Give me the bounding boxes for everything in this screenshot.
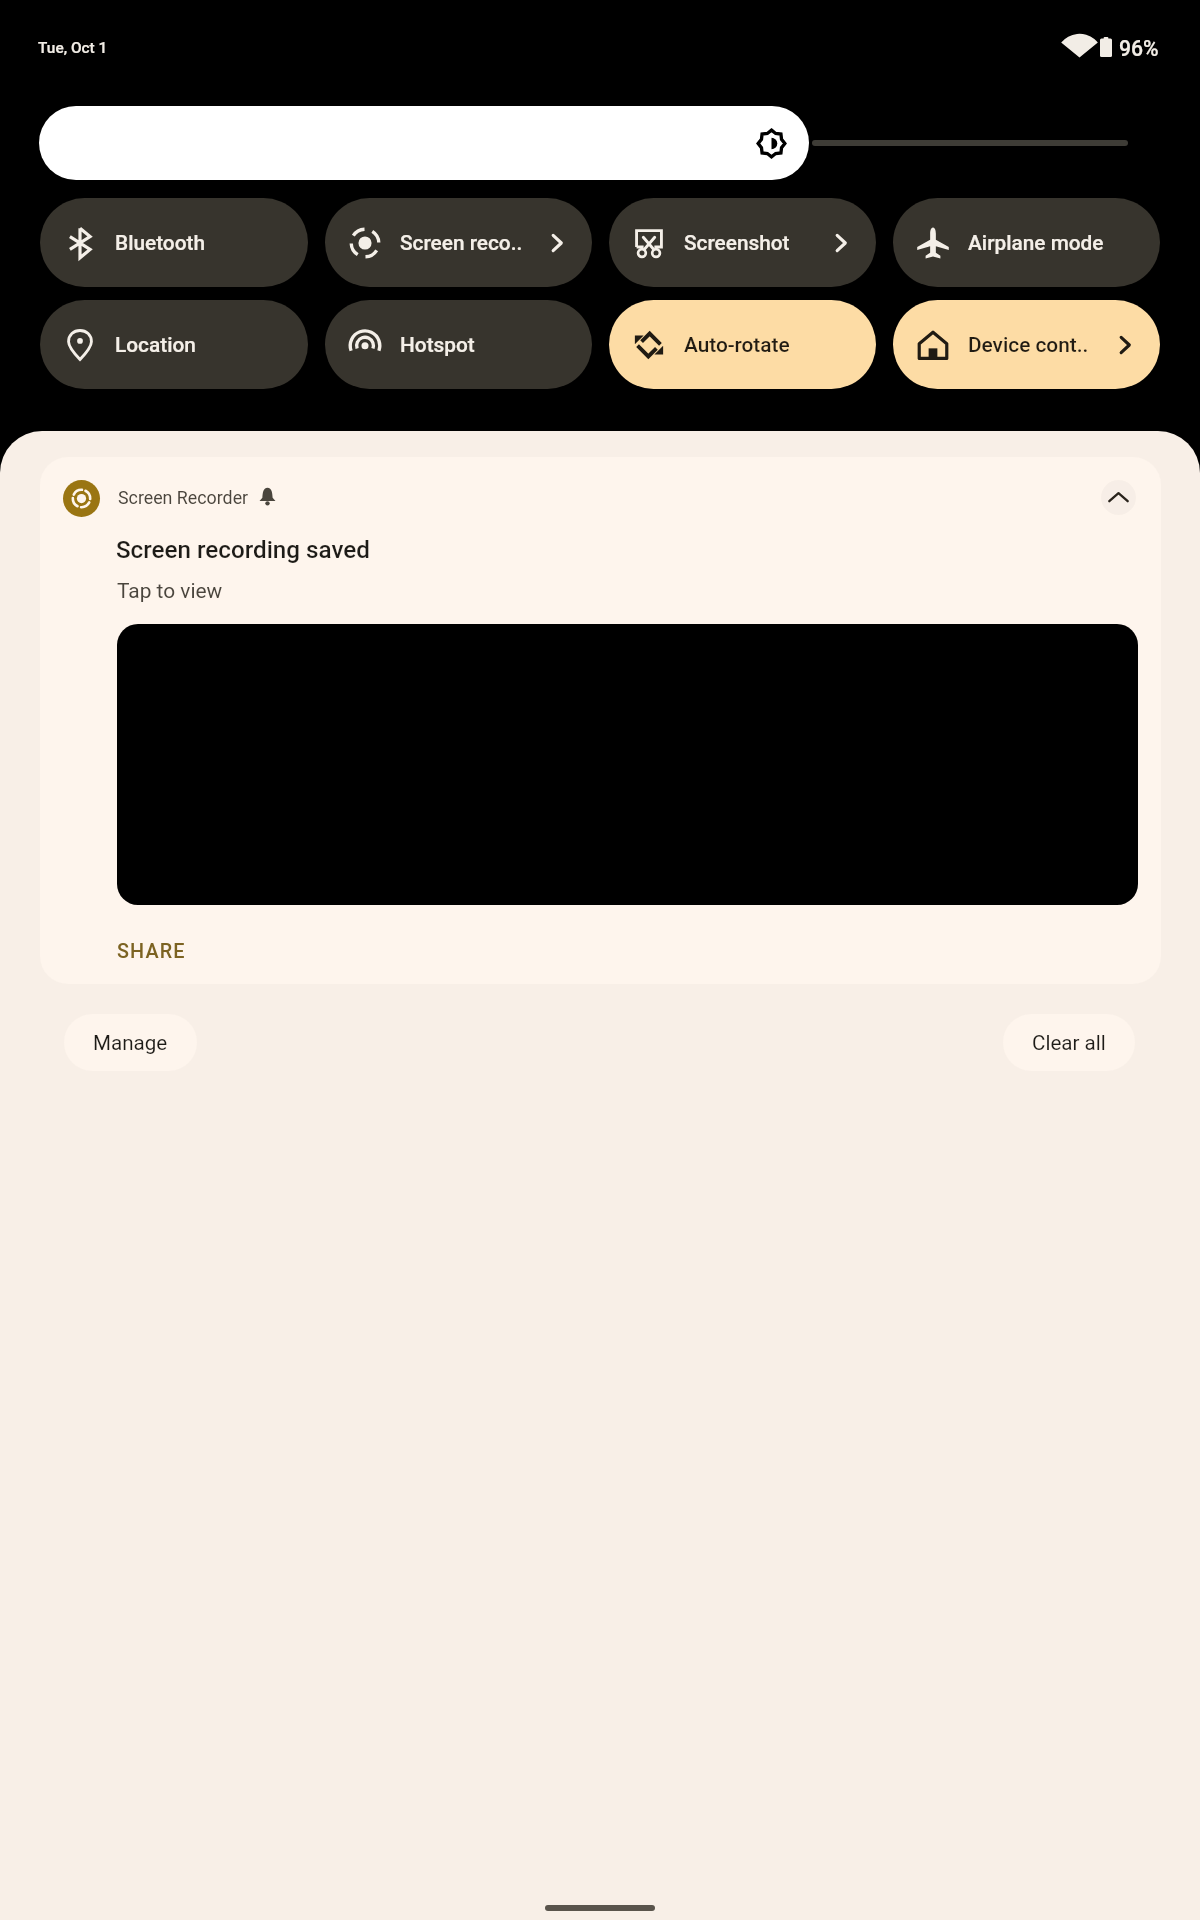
staticText: Bluetooth	[115, 231, 205, 255]
staticText: Screen recording saved	[116, 536, 370, 564]
button[interactable]: Collapse notification	[1101, 480, 1136, 515]
staticText: Location	[115, 333, 196, 357]
button[interactable]: Screen reco..	[325, 198, 592, 287]
staticText: Screen Recorder	[118, 487, 249, 508]
button[interactable]: SHARE	[117, 940, 186, 963]
staticText: Hotspot	[400, 333, 475, 357]
staticText: Airplane mode	[968, 231, 1104, 255]
button[interactable]: Manage	[64, 1014, 197, 1071]
button[interactable]: Bluetooth	[40, 198, 308, 287]
staticText: Screenshot	[684, 231, 790, 255]
button[interactable]: Airplane mode	[893, 198, 1160, 287]
button[interactable]: Screenshot	[609, 198, 876, 287]
button[interactable]: Location	[40, 300, 308, 389]
button[interactable]: Brightness	[39, 106, 809, 180]
staticText: Auto-rotate	[684, 333, 790, 357]
button[interactable]: Recording preview	[117, 624, 1138, 905]
staticText: Clear all	[1032, 1031, 1106, 1055]
staticText: 96%	[1119, 36, 1159, 61]
staticText: Device cont..	[968, 333, 1089, 357]
button[interactable]: Auto-rotate	[609, 300, 876, 389]
staticText: Tap to view	[117, 579, 223, 603]
staticText: Screen reco..	[400, 231, 523, 255]
staticText: Manage	[93, 1031, 168, 1055]
staticText: Tue, Oct 1	[38, 39, 108, 57]
button[interactable]: Hotspot	[325, 300, 592, 389]
button[interactable]: Device cont..	[893, 300, 1160, 389]
button[interactable]: Clear all	[1003, 1014, 1135, 1071]
button[interactable]: Screen Recorder	[40, 457, 1161, 984]
